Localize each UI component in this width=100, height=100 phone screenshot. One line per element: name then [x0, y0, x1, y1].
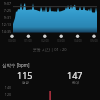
- staticText: 12:13: [0, 22, 11, 27]
- staticText: 최대: [72, 81, 79, 85]
- staticText: 평균: [22, 81, 29, 85]
- staticText: 140: [0, 85, 11, 90]
- staticText: 115: [17, 69, 33, 81]
- staticText: 심박수 [bpm]: [2, 62, 30, 68]
- button[interactable]: 115: [0, 69, 50, 85]
- staticText: 120: [0, 92, 11, 97]
- staticText: 147: [67, 69, 83, 81]
- staticText: 운동 시간 | 01 : 20: [33, 47, 67, 52]
- staticText: 00:00: [4, 39, 20, 43]
- staticText: 05:00: [86, 39, 100, 43]
- staticText: 02:00: [37, 39, 53, 43]
- staticText: 03:00: [53, 39, 69, 43]
- staticText: 01:00: [20, 39, 36, 43]
- staticText: 9:07: [0, 1, 11, 6]
- staticText: 14:35: [0, 29, 11, 34]
- staticText: 04:00: [70, 39, 86, 43]
- staticText: 7:25: [0, 8, 11, 13]
- button[interactable]: 147: [50, 69, 100, 85]
- staticText: 9:31: [0, 15, 11, 20]
